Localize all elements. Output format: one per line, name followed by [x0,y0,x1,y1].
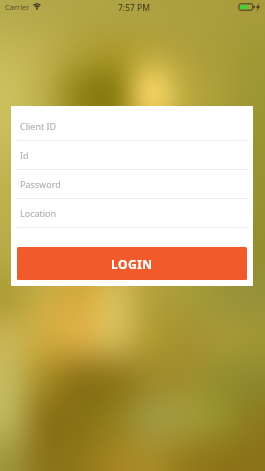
staticText: Carrier [5,2,30,12]
other: Wi-Fi signal [33,3,41,10]
staticText: LOGIN [111,256,153,272]
button[interactable]: Client ID [17,112,247,141]
button[interactable]: Location [17,199,247,228]
button[interactable]: LOGIN [17,247,247,280]
staticText: Client ID [20,120,57,132]
staticText: Id [20,149,29,161]
staticText: 7:57 PM [118,2,151,14]
button[interactable]: Id [17,141,247,170]
button[interactable]: Password [17,170,247,199]
other: Battery charging [239,2,261,12]
staticText: Location [20,207,57,219]
staticText: Password [20,178,61,190]
